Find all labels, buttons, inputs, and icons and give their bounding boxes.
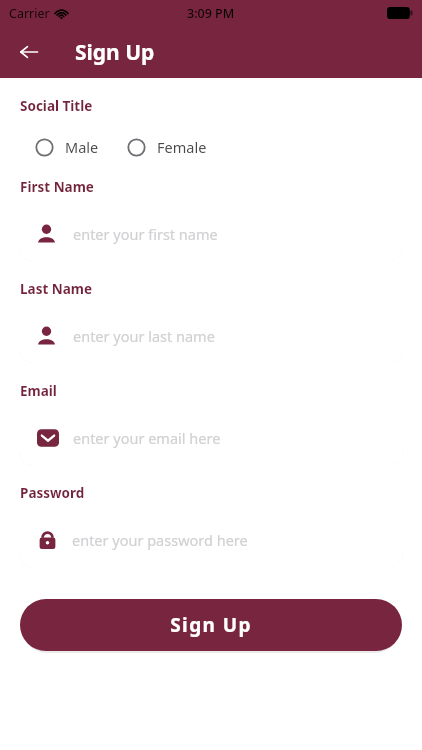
staticText: Sign Up [170,612,252,638]
staticText: enter your email here [73,428,221,448]
staticText: 3:09 PM [187,5,235,22]
staticText: Social Title [20,97,93,115]
button[interactable]: Female [125,134,209,160]
staticText: Sign Up [75,38,155,67]
staticText: enter your password here [72,530,248,550]
button[interactable]: Back [8,31,50,73]
staticText: Last Name [20,280,93,298]
staticText: enter your last name [73,326,215,346]
staticText: Password [20,484,85,502]
button[interactable]: Male [33,134,101,160]
button[interactable]: Sign Up [20,599,402,651]
staticText: Carrier [9,5,50,22]
staticText: Female [157,137,207,157]
button[interactable]: enter your email here [19,410,403,465]
staticText: First Name [20,178,94,196]
button[interactable]: enter your password here [19,512,403,567]
button[interactable]: enter your last name [19,308,403,363]
staticText: enter your first name [73,224,218,244]
staticText: Email [20,382,57,400]
staticText: Male [65,137,99,157]
button[interactable]: enter your first name [19,206,403,261]
